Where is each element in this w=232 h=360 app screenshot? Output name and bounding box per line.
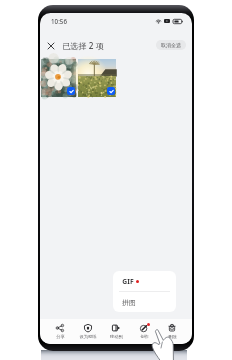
button[interactable]: 移动到 [102,324,130,339]
staticText: 删除 [168,334,177,339]
button[interactable]: GIF [113,271,176,291]
staticText: 取消全选 [161,42,181,48]
staticText: 拼图 [122,298,136,307]
button[interactable]: Selected photo [41,59,76,97]
staticText: 已选择 2 项 [62,40,104,51]
button[interactable]: 设为壁纸 [74,324,102,339]
staticText: 创作 [140,334,149,339]
staticText: 设为壁纸 [79,334,97,339]
button[interactable]: 分享 [46,324,74,339]
button[interactable]: Selected photo [78,59,116,97]
staticText: GIF [122,277,134,286]
staticText: 移动到 [110,334,123,339]
staticText: 分享 [56,334,65,339]
other: Tap pointer [152,330,174,360]
button[interactable]: Close [44,39,58,53]
staticText: 10:56 [51,17,67,25]
button[interactable]: 取消全选 [156,40,186,50]
button[interactable]: 拼图 [113,292,176,312]
button[interactable]: 创作 [130,324,158,339]
button[interactable]: 删除 [158,324,186,339]
